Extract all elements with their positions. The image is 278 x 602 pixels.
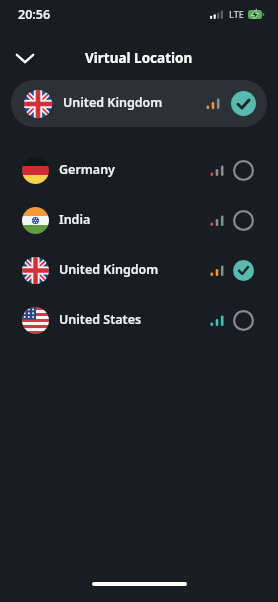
button[interactable]: United States — [0, 295, 278, 345]
staticText: United States — [59, 311, 142, 328]
button[interactable]: United Kingdom — [11, 80, 267, 127]
staticText: United Kingdom — [63, 94, 163, 111]
staticText: United Kingdom — [59, 261, 159, 278]
staticText: Virtual Location — [85, 49, 193, 67]
button[interactable]: India — [0, 195, 278, 245]
staticText: 20:56 — [18, 6, 51, 23]
button[interactable]: United Kingdom — [0, 245, 278, 295]
staticText: India — [59, 211, 91, 228]
staticText: Germany — [59, 161, 115, 178]
button[interactable]: Germany — [0, 145, 278, 195]
button[interactable] — [8, 42, 42, 74]
staticText: LTE — [229, 8, 244, 20]
